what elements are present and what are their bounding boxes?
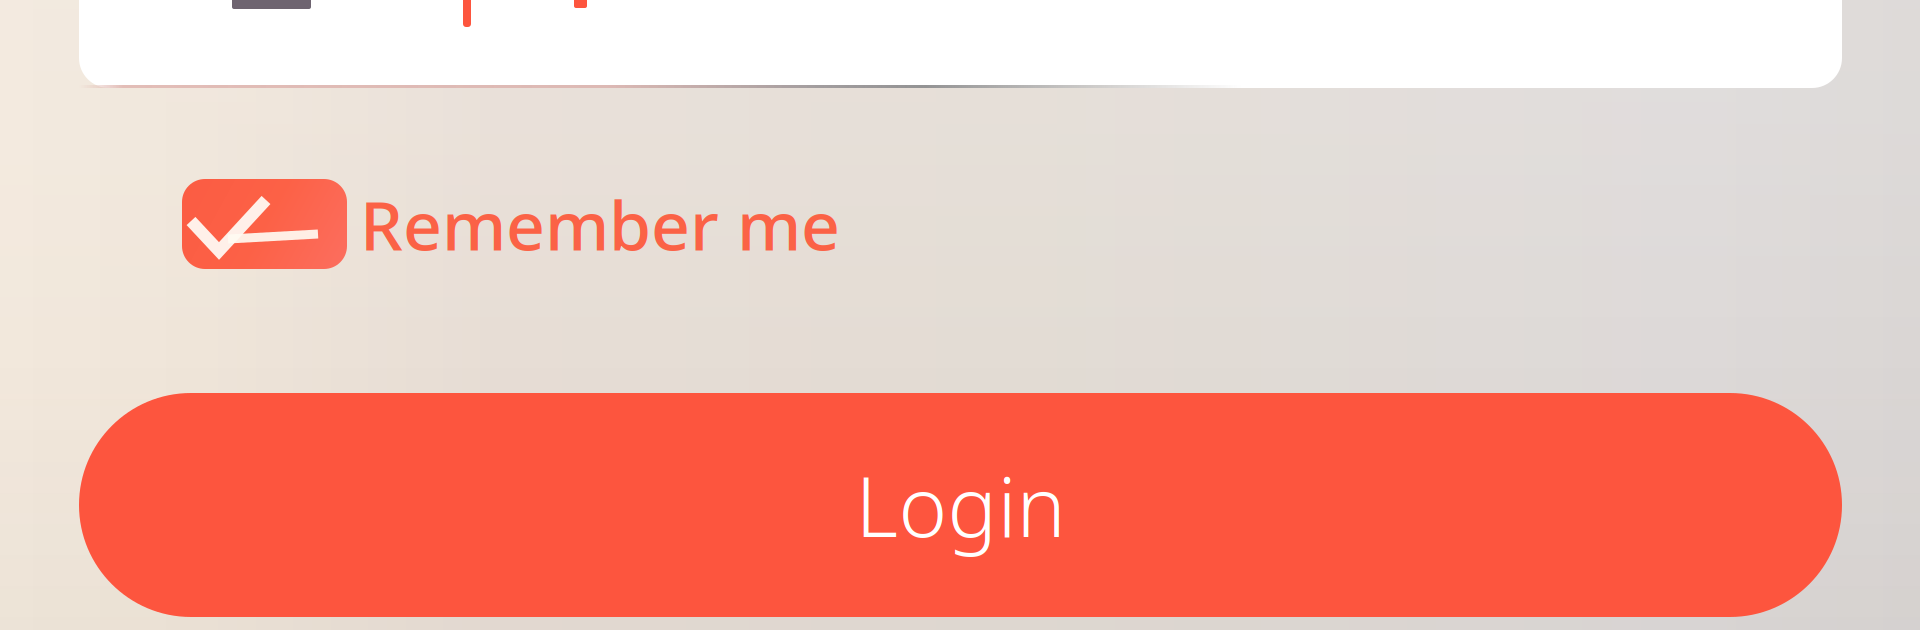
button[interactable]: Login	[79, 393, 1842, 617]
button[interactable]: Remember me	[182, 169, 1282, 279]
staticText: Remember me	[360, 179, 840, 269]
staticText: Login	[855, 450, 1065, 560]
